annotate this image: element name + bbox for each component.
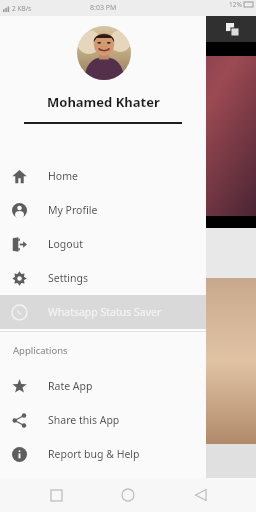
button[interactable]: Share <box>16 232 38 254</box>
staticText: Applications <box>13 344 68 357</box>
staticText: Share this App <box>48 413 120 427</box>
button[interactable]: Whatsapp Status Saver <box>0 295 206 329</box>
button[interactable]: Back <box>184 478 218 512</box>
staticText: 2 KB/s <box>12 4 32 13</box>
button[interactable]: Report bug & Help <box>0 437 206 471</box>
button[interactable]: Folder <box>14 450 36 472</box>
button[interactable]: Home <box>0 159 206 193</box>
button[interactable]: Upload <box>14 360 44 390</box>
staticText: Settings <box>48 271 88 285</box>
staticText: Logout <box>48 237 83 251</box>
staticText: My Profile <box>48 203 98 217</box>
button[interactable]: My Profile <box>0 193 206 227</box>
button[interactable]: Home <box>111 478 145 512</box>
button[interactable]: Ad <box>2 291 29 303</box>
staticText: Mohamed Khater <box>47 93 160 111</box>
staticText: Rate App <box>48 379 93 393</box>
button[interactable]: Recent apps <box>39 478 73 512</box>
button[interactable]: Share this App <box>0 403 206 437</box>
staticText: Ad <box>4 293 12 301</box>
staticText: 12% <box>229 0 242 9</box>
button[interactable]: Rate App <box>0 369 206 403</box>
staticText: 8:03 PM <box>90 3 117 13</box>
button[interactable]: Logout <box>0 227 206 261</box>
staticText: Whatsapp Status Saver <box>48 305 162 319</box>
button[interactable]: Translate <box>222 19 242 39</box>
staticText: Home <box>48 169 78 183</box>
staticText: Report bug & Help <box>48 447 140 461</box>
button[interactable]: Settings <box>0 261 206 295</box>
